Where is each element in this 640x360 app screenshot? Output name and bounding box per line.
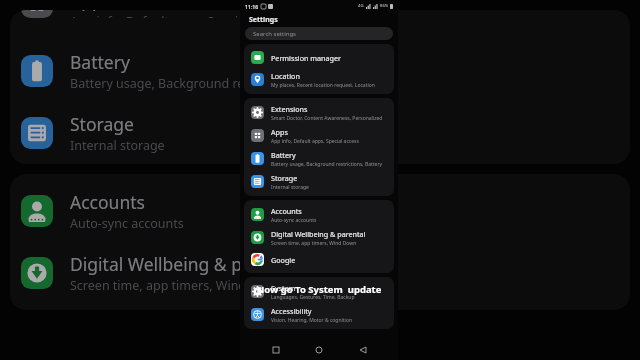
button[interactable]: Digital Wellbeing & parental controls [244,226,394,249]
staticText: Accessibility [271,306,312,316]
staticText: 86% [380,3,389,9]
button[interactable]: Extensions [244,101,394,124]
button[interactable]: Location [244,68,394,91]
staticText: Accounts [70,190,145,214]
staticText: Location [271,71,300,81]
staticText: Vision, Hearing, Motor & cognition [271,317,353,324]
button[interactable]: Back [355,342,371,358]
staticText: Screen time, app timers, Wind Down [70,277,284,294]
staticText: Auto-sync accounts [70,215,184,232]
staticText: Storage [271,173,298,183]
staticText: 4G [358,3,364,9]
staticText: Storage [70,112,134,136]
button[interactable]: Accounts [244,203,394,226]
button[interactable]: Search settings [245,27,393,40]
staticText: Languages, Gestures, Time, Backup [271,294,355,301]
button[interactable]: Storage [244,170,394,193]
staticText: Battery [70,50,130,74]
staticText: My places, Recent location request, Loca… [271,82,387,89]
button[interactable]: Accessibility [244,303,394,326]
staticText: Apps [70,10,112,12]
staticText: Screen time, app timers, Wind Down [271,240,357,247]
staticText: Extensions [271,104,308,114]
staticText: Smart Doctor, Content Awareness, Persona… [271,115,387,122]
button[interactable]: Recents [268,342,284,358]
staticText: App info, Default apps, Special access [70,13,290,18]
staticText: System [271,283,296,293]
staticText: Internal storage [70,137,165,154]
button[interactable]: System [244,280,394,303]
button[interactable]: Battery [244,147,394,170]
staticText: Now go To System update [240,283,398,296]
staticText: Permission manager [271,53,342,63]
staticText: Digital Wellbeing & parental controls [271,229,387,239]
staticText: Battery [271,150,296,160]
staticText: Apps [271,127,288,137]
button[interactable]: Permission manager [244,47,394,68]
staticText: Battery usage, Background restrictions, … [70,75,383,92]
staticText: Battery usage, Background restrictions, … [271,161,387,168]
staticText: Google [271,255,296,265]
button[interactable]: Google [244,249,394,270]
staticText: Digital Wellbeing & parental controls [70,252,372,276]
staticText: Internal storage [271,184,309,191]
staticText: Search settings [253,30,296,38]
staticText: Auto-sync accounts [271,217,317,224]
staticText: App info, Default apps, Special access [271,138,359,145]
staticText: 11:16 [245,3,259,10]
button[interactable]: Home [311,342,327,358]
button[interactable]: Apps [244,124,394,147]
staticText: Accounts [271,206,302,216]
staticText: Settings [249,15,278,25]
